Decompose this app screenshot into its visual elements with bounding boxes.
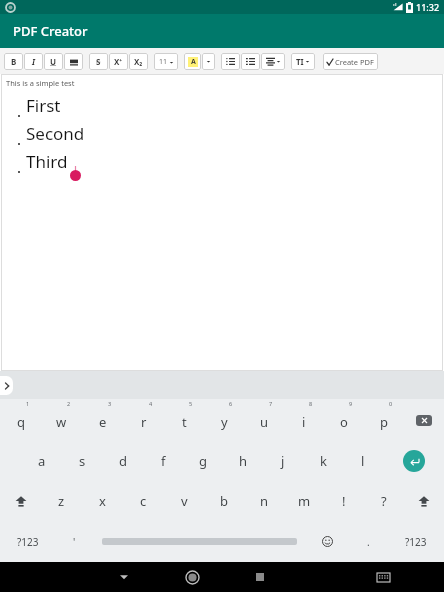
- button[interactable]: Alignment: [261, 53, 285, 70]
- button[interactable]: d: [103, 441, 143, 481]
- staticText: 9: [349, 400, 353, 407]
- button[interactable]: Space: [93, 521, 305, 562]
- staticText: p: [380, 413, 388, 431]
- staticText: i: [302, 413, 306, 431]
- staticText: x: [99, 492, 106, 510]
- button[interactable]: PDF Creator: [0, 14, 444, 48]
- staticText: S: [96, 56, 101, 67]
- button[interactable]: Subscript: [129, 53, 148, 70]
- staticText: Third: [26, 150, 68, 173]
- button[interactable]: Switch keyboard: [349, 562, 417, 592]
- staticText: First: [26, 94, 61, 117]
- button[interactable]: g: [183, 441, 223, 481]
- staticText: 6: [229, 400, 233, 407]
- button[interactable]: 8: [284, 399, 324, 441]
- button[interactable]: Back: [90, 562, 158, 592]
- staticText: h: [239, 452, 248, 470]
- staticText: I: [32, 56, 36, 67]
- button[interactable]: x: [82, 481, 123, 521]
- staticText: a: [38, 452, 46, 470]
- button[interactable]: Underline: [44, 53, 63, 70]
- button[interactable]: Bulleted list: [221, 53, 240, 70]
- staticText: X₂: [134, 56, 143, 67]
- button[interactable]: Home: [158, 562, 226, 592]
- staticText: 1: [26, 400, 30, 407]
- button[interactable]: 7: [244, 399, 284, 441]
- staticText: d: [119, 452, 127, 470]
- button[interactable]: Enter: [383, 441, 444, 481]
- button[interactable]: Shift: [0, 481, 41, 521]
- button[interactable]: ?123: [387, 521, 444, 562]
- button[interactable]: Text color: [184, 53, 201, 70]
- button[interactable]: n: [244, 481, 284, 521]
- staticText: 11:32: [416, 1, 440, 13]
- button[interactable]: Strikethrough: [89, 53, 108, 70]
- staticText: v: [181, 492, 188, 510]
- staticText: X⁺: [114, 56, 123, 67]
- button[interactable]: 4: [123, 399, 164, 441]
- staticText: TΙ: [296, 56, 304, 67]
- button[interactable]: v: [164, 481, 204, 521]
- staticText: ?123: [405, 535, 427, 549]
- staticText: s: [79, 452, 86, 470]
- button[interactable]: 0: [364, 399, 404, 441]
- staticText: 2: [67, 400, 71, 407]
- button[interactable]: Paragraph style: [291, 53, 315, 70]
- button[interactable]: 5: [164, 399, 204, 441]
- button[interactable]: j: [263, 441, 303, 481]
- button[interactable]: 6: [204, 399, 244, 441]
- staticText: f: [161, 452, 166, 470]
- button[interactable]: ': [56, 521, 93, 562]
- button[interactable]: 3: [82, 399, 123, 441]
- button[interactable]: m: [284, 481, 324, 521]
- button[interactable]: Expand toolbar: [0, 376, 13, 395]
- staticText: 7: [269, 400, 273, 407]
- button[interactable]: c: [123, 481, 164, 521]
- staticText: r: [141, 413, 147, 431]
- button[interactable]: Numbered list: [241, 53, 260, 70]
- staticText: Second: [26, 122, 85, 145]
- staticText: g: [199, 452, 207, 470]
- button[interactable]: Shift: [404, 481, 444, 521]
- staticText: ?: [381, 492, 387, 510]
- button[interactable]: 2: [41, 399, 82, 441]
- button[interactable]: !: [324, 481, 364, 521]
- button[interactable]: ?123: [0, 521, 56, 562]
- button[interactable]: Font size: [154, 53, 178, 70]
- button[interactable]: Emoji: [305, 521, 350, 562]
- staticText: u: [260, 413, 269, 431]
- staticText: This is a simple test: [6, 78, 75, 88]
- button[interactable]: h: [223, 441, 263, 481]
- button[interactable]: a: [21, 441, 62, 481]
- button[interactable]: b: [204, 481, 244, 521]
- staticText: m: [298, 492, 311, 510]
- button[interactable]: Bold: [4, 53, 23, 70]
- button[interactable]: 1: [0, 399, 41, 441]
- staticText: 11: [159, 57, 168, 67]
- staticText: 3: [108, 400, 112, 407]
- staticText: o: [340, 413, 348, 431]
- staticText: n: [260, 492, 269, 510]
- button[interactable]: l: [343, 441, 383, 481]
- staticText: e: [99, 413, 107, 431]
- button[interactable]: k: [303, 441, 343, 481]
- staticText: 4: [149, 400, 153, 407]
- button[interactable]: Superscript: [109, 53, 128, 70]
- button[interactable]: Recents: [226, 562, 294, 592]
- staticText: l: [361, 452, 365, 470]
- button[interactable]: Italic: [24, 53, 43, 70]
- button[interactable]: ?: [364, 481, 404, 521]
- staticText: A: [191, 57, 196, 67]
- staticText: y: [221, 413, 228, 431]
- button[interactable]: z: [41, 481, 82, 521]
- button[interactable]: Clear formatting: [64, 53, 83, 70]
- button[interactable]: Create PDF: [327, 53, 374, 70]
- button[interactable]: s: [62, 441, 103, 481]
- button[interactable]: Backspace: [404, 399, 444, 441]
- button[interactable]: Text color options: [202, 53, 215, 70]
- button[interactable]: 9: [324, 399, 364, 441]
- button[interactable]: .: [350, 521, 387, 562]
- staticText: w: [56, 413, 67, 431]
- button[interactable]: f: [143, 441, 183, 481]
- staticText: b: [220, 492, 228, 510]
